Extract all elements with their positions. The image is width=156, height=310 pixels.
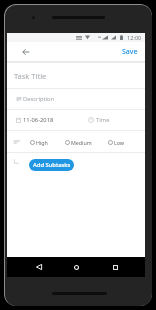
button[interactable]: Time <box>83 110 145 130</box>
button[interactable]: High <box>30 132 48 152</box>
staticText: 12:00 <box>127 34 142 42</box>
button[interactable]: Add Subtasks <box>29 159 74 171</box>
staticText: Add Subtasks <box>33 161 71 169</box>
staticText: Task Title <box>14 71 47 81</box>
button[interactable]: Save <box>115 42 145 62</box>
button[interactable]: Back <box>29 257 49 277</box>
button[interactable]: Back <box>15 42 36 62</box>
button[interactable]: Low <box>108 132 125 152</box>
button[interactable]: Recents <box>105 257 125 277</box>
button[interactable]: Description <box>7 89 145 109</box>
staticText: Time <box>96 116 110 124</box>
staticText: Description <box>23 95 55 103</box>
staticText: 11-06-2018 <box>23 116 54 124</box>
staticText: High <box>36 139 48 146</box>
button[interactable]: Medium <box>65 132 92 152</box>
button[interactable]: 11-06-2018 <box>7 110 83 130</box>
staticText: Low <box>114 139 125 146</box>
staticText: Save <box>122 47 138 57</box>
button[interactable]: Home <box>66 257 86 277</box>
staticText: Medium <box>71 139 92 146</box>
button[interactable]: Task Title <box>7 63 145 88</box>
